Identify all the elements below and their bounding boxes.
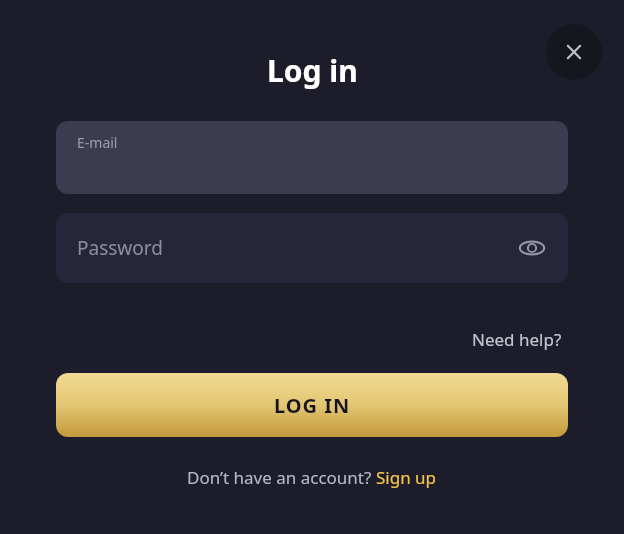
button[interactable]: Sign up (376, 466, 437, 489)
staticText: LOG IN (274, 392, 351, 419)
staticText: Don’t have an account? (187, 466, 376, 489)
button[interactable]: Close (546, 24, 602, 80)
staticText: E-mail (77, 133, 118, 152)
staticText: Password (77, 235, 163, 261)
button[interactable]: E-mail (56, 121, 568, 194)
staticText: Log in (267, 50, 358, 91)
button[interactable]: Show password (512, 228, 552, 268)
button[interactable]: Need help? (466, 324, 568, 355)
staticText: Sign up (376, 466, 437, 489)
staticText: Need help? (472, 328, 562, 351)
button[interactable]: Password (56, 213, 568, 283)
button[interactable]: LOG IN (56, 373, 568, 437)
